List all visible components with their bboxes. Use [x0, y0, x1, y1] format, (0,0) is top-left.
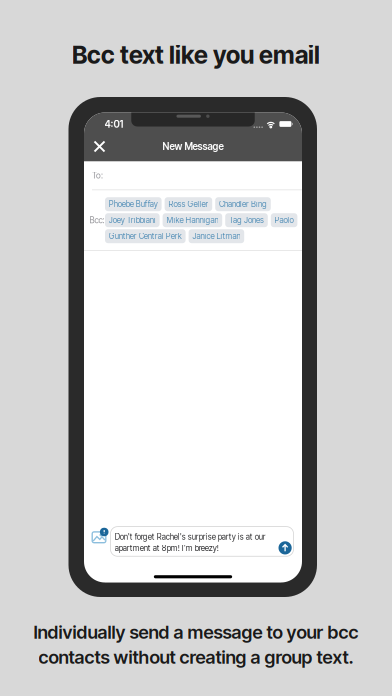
staticText: Joey Tribbiani — [109, 215, 156, 225]
staticText: Tag Jones — [229, 215, 264, 225]
staticText: To: — [92, 170, 103, 181]
staticText: Ross Geller — [168, 199, 208, 209]
staticText: Mike Hannigan — [166, 215, 218, 225]
staticText: Phoebe Buffay — [109, 199, 158, 209]
staticText: New Message — [162, 141, 223, 152]
staticText: Don't forget Rachel's surprise party is … — [115, 532, 266, 542]
staticText: Janice Litman — [192, 231, 240, 241]
staticText: Chandler Bing — [219, 199, 267, 209]
button[interactable]: Close — [84, 135, 115, 157]
staticText: Gunther Central Perk — [109, 231, 182, 241]
staticText: contacts without creating a group text. — [38, 646, 353, 668]
staticText: Bcc: — [89, 215, 104, 225]
staticText: Individually send a message to your bcc — [33, 621, 358, 643]
button[interactable]: Send — [278, 540, 292, 553]
staticText: Bcc text like you email — [72, 40, 320, 69]
staticText: 4:01 — [104, 118, 123, 130]
button[interactable]: Add photo — [87, 523, 110, 560]
staticText: apartment at 8pm! I'm breezy! — [115, 543, 219, 553]
staticText: Paolo — [275, 215, 294, 225]
